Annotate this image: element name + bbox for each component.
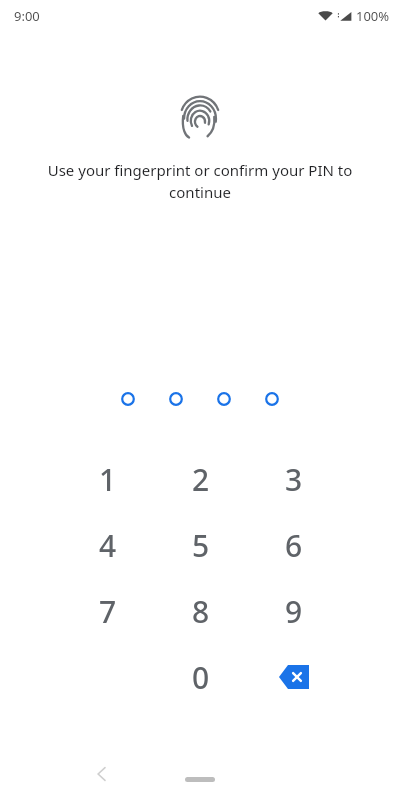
staticText: 2 (192, 459, 210, 500)
button[interactable]: Home (185, 777, 215, 782)
button[interactable]: 2 (154, 446, 247, 512)
staticText: 3 (285, 459, 303, 500)
staticText: 6 (285, 525, 303, 566)
button[interactable]: 5 (154, 512, 247, 578)
button[interactable]: 0 (154, 644, 247, 710)
staticText: 1 (99, 459, 117, 500)
button[interactable]: 8 (154, 578, 247, 644)
staticText: 0 (192, 657, 210, 698)
other: Backspace (279, 665, 309, 689)
button[interactable]: Backspace (247, 644, 340, 710)
button[interactable]: 9 (247, 578, 340, 644)
button[interactable]: 6 (247, 512, 340, 578)
staticText: 5 (192, 525, 210, 566)
staticText: 7 (99, 591, 117, 632)
staticText: 4 (99, 525, 117, 566)
staticText: 9:00 (14, 7, 40, 25)
button[interactable]: Back (88, 760, 116, 788)
staticText: 8 (192, 591, 210, 632)
button[interactable]: 3 (247, 446, 340, 512)
button[interactable]: 7 (61, 578, 154, 644)
button[interactable]: 1 (61, 446, 154, 512)
button[interactable]: 4 (61, 512, 154, 578)
staticText: Use your fingerprint or confirm your PIN… (40, 160, 360, 203)
staticText: 100% (356, 7, 390, 25)
staticText: 9 (285, 591, 303, 632)
